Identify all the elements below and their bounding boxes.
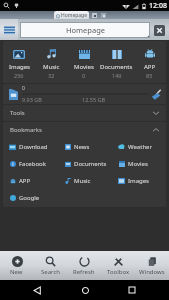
button[interactable]: Toolbox [101, 251, 135, 280]
button[interactable]: Close [152, 23, 166, 37]
staticText: Homepage [61, 12, 88, 19]
staticText: APP [144, 63, 156, 71]
staticText: Homepage [66, 25, 105, 35]
button[interactable]: Windows [135, 251, 169, 280]
button[interactable]: Homepage [54, 11, 89, 19]
staticText: Download [19, 143, 48, 151]
button[interactable]: Bookmarks [3, 122, 166, 138]
staticText: Images [128, 177, 149, 185]
button[interactable]: Images [3, 41, 35, 83]
staticText: Movies [74, 63, 94, 71]
button[interactable]: Homepage [20, 22, 150, 38]
button[interactable]: Music [35, 41, 67, 83]
staticText: Toolbox [107, 268, 130, 276]
button[interactable]: APP [133, 41, 166, 83]
button[interactable]: Home [75, 280, 95, 300]
button[interactable]: Refresh [67, 251, 101, 280]
button[interactable]: New [0, 251, 33, 280]
staticText: Windows [139, 268, 165, 276]
staticText: 256 [14, 72, 24, 79]
button[interactable]: Movies [112, 155, 166, 172]
button[interactable]: 0 [3, 84, 166, 104]
staticText: 149 [112, 72, 122, 79]
button[interactable]: Close tab [91, 12, 97, 18]
button[interactable]: Movies [67, 41, 100, 83]
staticText: Documents [74, 160, 107, 168]
button[interactable]: Music [58, 172, 112, 189]
staticText: 9.93 GB [22, 96, 42, 103]
button[interactable]: Google [3, 189, 58, 206]
button[interactable]: Weather [112, 138, 166, 155]
staticText: Images [9, 63, 30, 71]
staticText: Google [19, 194, 40, 202]
button[interactable]: Download [3, 138, 58, 155]
button[interactable]: News [58, 138, 112, 155]
button[interactable]: Images [112, 172, 166, 189]
staticText: Refresh [73, 268, 95, 276]
staticText: APP [19, 177, 31, 185]
staticText: Movies [128, 160, 148, 168]
button[interactable]: Documents [100, 41, 133, 83]
staticText: New [10, 268, 23, 276]
button[interactable]: Recents [122, 280, 142, 300]
staticText: 12:08 [149, 1, 167, 11]
staticText: Search [41, 268, 60, 276]
button[interactable]: Tools [3, 105, 166, 121]
staticText: Tools [10, 109, 25, 117]
staticText: Documents [100, 63, 133, 71]
staticText: Weather [128, 143, 152, 151]
button[interactable]: Search [33, 251, 67, 280]
staticText: Music [74, 177, 91, 185]
staticText: Facebook [19, 160, 46, 168]
staticText: News [74, 143, 90, 151]
staticText: Music [43, 63, 60, 71]
staticText: 0 [22, 85, 25, 92]
button[interactable]: Menu [0, 19, 18, 40]
button[interactable]: Facebook [3, 155, 58, 172]
button[interactable]: APP [3, 172, 58, 189]
button[interactable]: Back [27, 280, 47, 300]
staticText: 32 [48, 72, 55, 79]
button[interactable]: Documents [58, 155, 112, 172]
button[interactable]: New tab [100, 12, 106, 18]
staticText: 0 [82, 72, 86, 79]
staticText: 12.55 GB [82, 96, 106, 103]
staticText: Bookmarks [10, 126, 42, 134]
staticText: 85 [146, 72, 153, 79]
